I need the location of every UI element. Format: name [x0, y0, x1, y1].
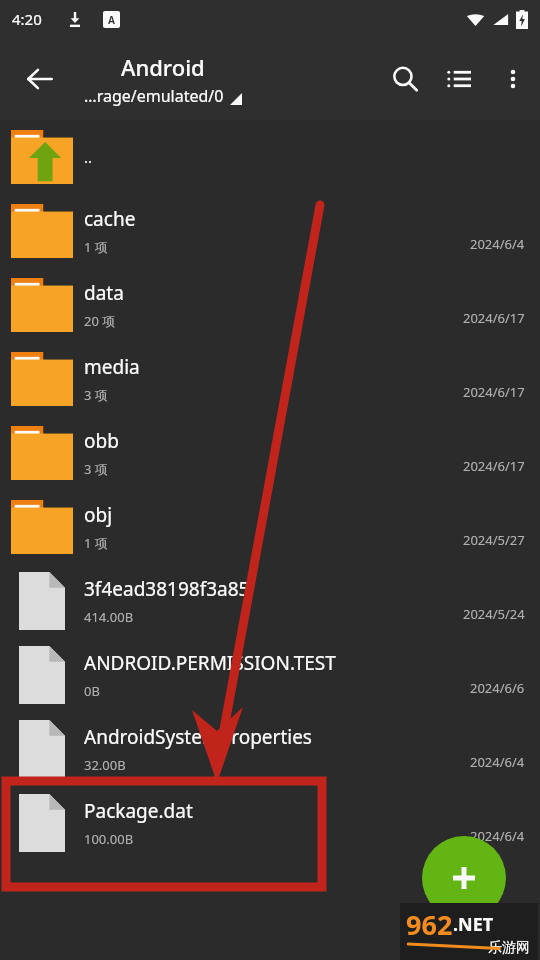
staticText: A	[108, 13, 115, 27]
staticText: 3 项	[84, 386, 108, 404]
staticText: media	[84, 354, 140, 380]
button[interactable]: Search	[378, 52, 432, 106]
staticText: 1 项	[84, 238, 108, 256]
button[interactable]: Add	[422, 836, 506, 920]
staticText: 2024/6/4	[470, 753, 525, 771]
button[interactable]: ANDROID.PERMISSION.TEST	[0, 638, 540, 712]
button[interactable]: media	[0, 342, 540, 416]
staticText: cache	[84, 206, 136, 232]
staticText: AndroidSystemProperties	[84, 724, 312, 750]
button[interactable]: ..	[0, 120, 540, 194]
staticText: obb	[84, 428, 119, 454]
staticText: obj	[84, 502, 113, 528]
staticText: 2024/6/6	[470, 679, 525, 697]
staticText: 2024/6/17	[463, 383, 525, 401]
staticText: 3f4ead38198f3a85	[84, 576, 250, 602]
button[interactable]: View mode	[432, 52, 486, 106]
staticText: 962	[406, 906, 453, 943]
button[interactable]: Android	[84, 52, 242, 107]
staticText: 2024/5/24	[463, 605, 525, 623]
staticText: ..	[84, 147, 93, 167]
button[interactable]: cache	[0, 194, 540, 268]
staticText: 乐游网	[488, 939, 530, 957]
staticText: ANDROID.PERMISSION.TEST	[84, 650, 336, 676]
staticText: 1 项	[84, 534, 108, 552]
staticText: 2024/6/17	[463, 457, 525, 475]
staticText: …rage/emulated/0	[84, 85, 224, 107]
button[interactable]: 3f4ead38198f3a85	[0, 564, 540, 638]
staticText: 2024/6/4	[470, 827, 525, 845]
staticText: data	[84, 280, 124, 306]
staticText: 20 项	[84, 312, 116, 330]
button[interactable]: Back	[12, 51, 68, 107]
staticText: Android	[121, 52, 205, 82]
staticText: .NET	[453, 912, 494, 937]
staticText: 4:20	[12, 9, 42, 29]
staticText: 0B	[84, 682, 100, 700]
button[interactable]: AndroidSystemProperties	[0, 712, 540, 786]
staticText: 3 项	[84, 460, 108, 478]
staticText: 2024/6/17	[463, 309, 525, 327]
button[interactable]: Package.dat	[0, 786, 540, 860]
button[interactable]: obj	[0, 490, 540, 564]
staticText: 100.00B	[84, 830, 134, 848]
button[interactable]: data	[0, 268, 540, 342]
button[interactable]: More options	[486, 52, 540, 106]
staticText: Package.dat	[84, 798, 193, 824]
staticText: 414.00B	[84, 608, 134, 626]
staticText: 2024/6/4	[470, 235, 525, 253]
button[interactable]: obb	[0, 416, 540, 490]
staticText: 2024/5/27	[463, 531, 525, 549]
staticText: 32.00B	[84, 756, 126, 774]
